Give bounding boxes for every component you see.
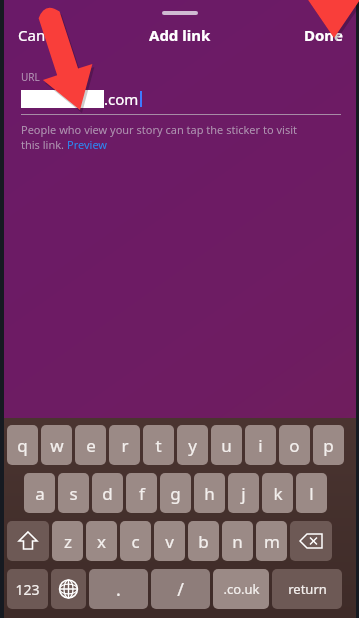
staticText: m xyxy=(264,530,280,553)
button[interactable]: return xyxy=(272,569,342,609)
button[interactable]: Preview xyxy=(67,137,108,152)
staticText: b xyxy=(198,530,209,553)
staticText: k xyxy=(273,482,283,505)
button[interactable]: e xyxy=(75,425,106,465)
staticText: p xyxy=(323,434,334,457)
button[interactable]: Change keyboard language xyxy=(51,569,86,609)
button[interactable]: a xyxy=(24,473,55,513)
button[interactable]: x xyxy=(86,521,117,561)
button[interactable]: t xyxy=(143,425,174,465)
staticText: d xyxy=(102,482,113,505)
staticText: / xyxy=(177,577,184,602)
staticText: j xyxy=(241,482,246,505)
button[interactable]: v xyxy=(154,521,185,561)
staticText: URL xyxy=(21,70,40,84)
staticText: this link. xyxy=(21,137,67,152)
staticText: Preview xyxy=(67,137,108,152)
button[interactable]: Done xyxy=(294,21,356,49)
staticText: z xyxy=(64,530,72,553)
button[interactable]: k xyxy=(262,473,293,513)
button[interactable]: i xyxy=(245,425,276,465)
staticText: x xyxy=(97,530,106,553)
button[interactable]: z xyxy=(52,521,83,561)
staticText: w xyxy=(50,434,64,457)
staticText: .co.uk xyxy=(223,580,260,598)
button[interactable]: Backspace xyxy=(290,521,332,561)
button[interactable]: r xyxy=(109,425,140,465)
staticText: People who view your story can tap the s… xyxy=(21,122,297,137)
staticText: y xyxy=(188,434,197,457)
staticText: a xyxy=(35,482,45,505)
staticText: i xyxy=(258,434,263,457)
staticText: 123 xyxy=(15,580,40,599)
staticText: u xyxy=(221,434,232,457)
button[interactable]: b xyxy=(188,521,219,561)
staticText: l xyxy=(309,482,314,505)
button[interactable]: Cancel xyxy=(4,21,75,49)
button[interactable]: 123 xyxy=(7,569,48,609)
button[interactable]: s xyxy=(58,473,89,513)
button[interactable]: h xyxy=(194,473,225,513)
staticText: q xyxy=(17,434,28,457)
staticText: . xyxy=(116,577,121,602)
button[interactable]: j xyxy=(228,473,259,513)
button[interactable]: p xyxy=(313,425,344,465)
button[interactable]: w xyxy=(41,425,72,465)
staticText: Add link xyxy=(149,25,211,45)
staticText: o xyxy=(289,434,300,457)
button[interactable]: u xyxy=(211,425,242,465)
button[interactable]: Shift xyxy=(7,521,49,561)
button[interactable]: n xyxy=(222,521,253,561)
staticText: t xyxy=(155,434,162,457)
staticText: e xyxy=(86,434,96,457)
button[interactable]: c xyxy=(120,521,151,561)
button[interactable]: / xyxy=(151,569,210,609)
staticText: Done xyxy=(304,25,344,45)
staticText: n xyxy=(232,530,243,553)
staticText: f xyxy=(139,482,145,505)
button[interactable]: y xyxy=(177,425,208,465)
staticText: .com xyxy=(104,89,139,109)
button[interactable]: f xyxy=(126,473,157,513)
staticText: Cancel xyxy=(18,25,65,45)
staticText: v xyxy=(165,530,174,553)
button[interactable]: q xyxy=(7,425,38,465)
staticText: return xyxy=(288,580,327,598)
button[interactable]: . xyxy=(89,569,148,609)
staticText: r xyxy=(121,434,129,457)
staticText: h xyxy=(204,482,215,505)
staticText: s xyxy=(69,482,78,505)
button[interactable]: .com xyxy=(4,88,356,110)
button[interactable]: d xyxy=(92,473,123,513)
button[interactable]: m xyxy=(256,521,287,561)
button[interactable]: o xyxy=(279,425,310,465)
staticText: g xyxy=(170,482,181,505)
staticText: c xyxy=(131,530,140,553)
button[interactable]: .co.uk xyxy=(213,569,269,609)
button[interactable]: g xyxy=(160,473,191,513)
button[interactable]: l xyxy=(296,473,327,513)
